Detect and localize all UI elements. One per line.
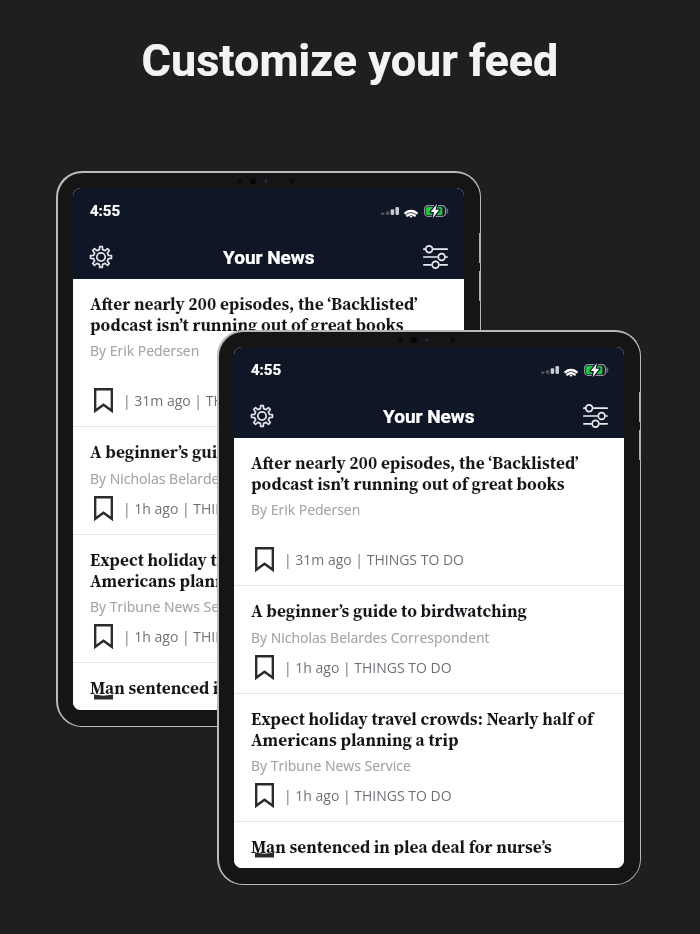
staticText: Your News: [223, 246, 315, 268]
button[interactable]: A beginner’s guide to birdwatching: [234, 586, 624, 693]
staticText: | 31m ago | THINGS TO DO: [284, 550, 464, 569]
staticText: After nearly 200 episodes, the ‘Backlist…: [251, 451, 607, 495]
staticText: | 1h ago | THINGS TO DO: [123, 627, 291, 646]
button[interactable]: Bookmark: [90, 387, 116, 413]
button[interactable]: Expect holiday travel crowds: Nearly hal…: [73, 535, 464, 662]
button[interactable]: Customize feed filters: [573, 394, 617, 438]
staticText: Expect holiday travel crowds: Nearly hal…: [251, 707, 607, 751]
staticText: By Erik Pedersen: [251, 500, 361, 519]
staticText: By Nicholas Belardes Correspondent: [251, 628, 490, 647]
button[interactable]: Settings: [79, 235, 123, 279]
button[interactable]: After nearly 200 episodes, the ‘Backlist…: [73, 279, 464, 426]
staticText: By Tribune News Service: [251, 756, 411, 775]
staticText: By Erik Pedersen: [90, 341, 200, 360]
staticText: | 1h ago | THINGS TO DO: [284, 786, 452, 805]
button[interactable]: Bookmark: [251, 546, 277, 572]
button[interactable]: Bookmark: [90, 495, 116, 521]
staticText: After nearly 200 episodes, the ‘Backlist…: [90, 292, 447, 336]
staticText: 4:55: [90, 202, 121, 220]
staticText: 4:55: [251, 361, 282, 379]
staticText: By Tribune News Service: [90, 597, 250, 616]
button[interactable]: A beginner’s guide to birdwatching: [73, 427, 464, 534]
button[interactable]: Bookmark: [251, 654, 277, 680]
button[interactable]: Settings: [240, 394, 284, 438]
button[interactable]: Man sentenced in plea deal for nurse’s m…: [73, 663, 464, 710]
staticText: Expect holiday travel crowds: Nearly hal…: [90, 548, 447, 592]
button[interactable]: Bookmark: [90, 623, 116, 649]
staticText: Man sentenced in plea deal for nurse’s m…: [251, 835, 607, 855]
staticText: A beginner’s guide to birdwatching: [90, 440, 366, 464]
staticText: Customize your feed: [0, 34, 700, 87]
button[interactable]: Customize feed filters: [413, 235, 457, 279]
staticText: A beginner’s guide to birdwatching: [251, 599, 527, 623]
button[interactable]: After nearly 200 episodes, the ‘Backlist…: [234, 438, 624, 585]
staticText: Your News: [383, 405, 475, 427]
staticText: | 31m ago | THINGS TO DO: [123, 391, 303, 410]
button[interactable]: Man sentenced in plea deal for nurse’s m…: [234, 822, 624, 868]
staticText: | 1h ago | THINGS TO DO: [284, 658, 452, 677]
staticText: By Nicholas Belardes Correspondent: [90, 469, 329, 488]
staticText: Man sentenced in plea deal for nurse’s m…: [90, 676, 447, 697]
button[interactable]: Expect holiday travel crowds: Nearly hal…: [234, 694, 624, 821]
staticText: | 1h ago | THINGS TO DO: [123, 499, 291, 518]
button[interactable]: Bookmark: [251, 782, 277, 808]
